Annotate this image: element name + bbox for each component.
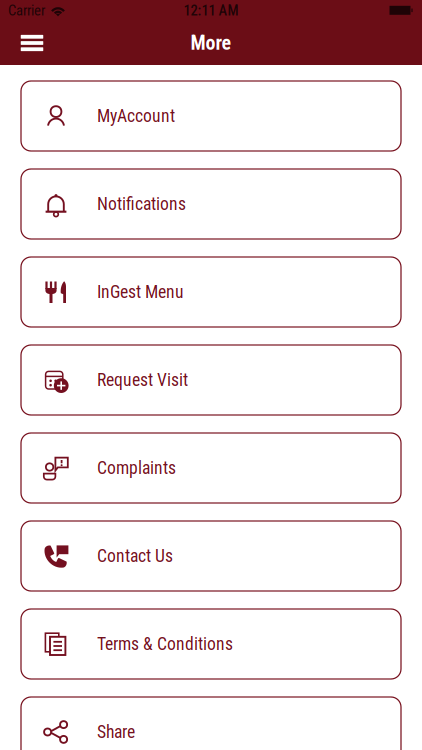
button[interactable]: Complaints (21, 433, 401, 503)
button[interactable]: MyAccount (21, 81, 401, 151)
staticText: InGest Menu (97, 282, 184, 302)
staticText: Complaints (97, 458, 176, 478)
staticText: Terms & Conditions (97, 634, 233, 654)
staticText: Contact Us (97, 546, 173, 566)
staticText: MyAccount (97, 106, 175, 126)
button[interactable]: InGest Menu (21, 257, 401, 327)
staticText: Carrier (8, 2, 45, 19)
button[interactable]: Notifications (21, 169, 401, 239)
staticText: Request Visit (97, 370, 188, 390)
button[interactable]: Terms & Conditions (21, 609, 401, 679)
button[interactable]: Menu (10, 21, 54, 65)
staticText: Notifications (97, 194, 186, 214)
staticText: Share (97, 722, 135, 742)
staticText: More (190, 31, 231, 55)
staticText: 12:11 AM (183, 2, 238, 19)
button[interactable]: Request Visit (21, 345, 401, 415)
button[interactable]: Share (21, 697, 401, 750)
button[interactable]: Contact Us (21, 521, 401, 591)
